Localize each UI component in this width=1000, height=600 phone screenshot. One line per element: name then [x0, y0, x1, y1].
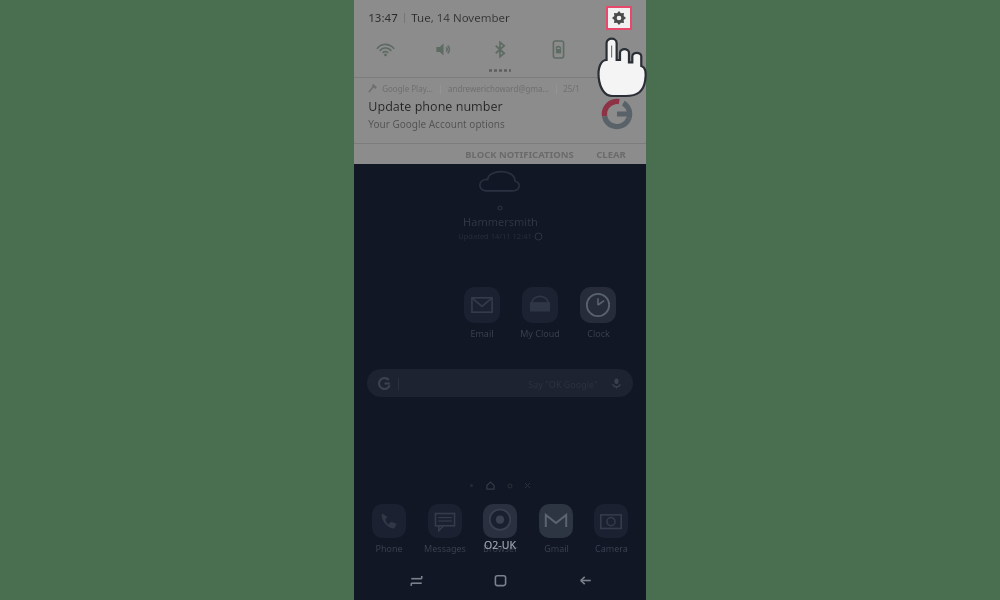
button[interactable]: Email: [454, 287, 510, 339]
staticText: Hammersmith: [463, 214, 538, 229]
button[interactable]: Wi-Fi: [372, 36, 398, 62]
staticText: Update phone number: [368, 98, 503, 115]
staticText: Updated 14/11 12:41: [458, 231, 532, 241]
button[interactable]: Bluetooth: [487, 36, 513, 62]
staticText: BLOCK NOTIFICATIONS: [465, 148, 574, 160]
staticText: Email: [470, 327, 494, 339]
staticText: Gmail: [544, 542, 569, 554]
button[interactable]: BLOCK NOTIFICATIONS: [461, 144, 578, 164]
staticText: Camera: [595, 542, 628, 554]
staticText: 13:47: [368, 10, 398, 26]
staticText: Phone: [375, 542, 403, 554]
button[interactable]: Camera: [586, 504, 636, 554]
staticText: CLEAR: [596, 148, 626, 160]
button[interactable]: Home: [477, 563, 523, 597]
button[interactable]: Sound: [430, 36, 456, 62]
button[interactable]: Gmail: [531, 504, 581, 554]
button[interactable]: Say "OK Google": [367, 369, 633, 397]
button[interactable]: Settings: [608, 8, 630, 28]
button[interactable]: Hammersmith: [354, 168, 646, 241]
staticText: Messages: [424, 542, 466, 554]
staticText: O2-UK: [484, 538, 516, 552]
staticText: Browser: [483, 542, 518, 554]
staticText: Google Play...: [382, 83, 433, 94]
button[interactable]: Browser: [475, 504, 525, 554]
button[interactable]: Phone: [364, 504, 414, 554]
staticText: andrewerichoward@gma...: [448, 83, 549, 94]
button[interactable]: Back: [562, 563, 608, 597]
button[interactable]: My Cloud: [512, 287, 568, 339]
staticText: My Cloud: [520, 327, 560, 339]
staticText: 25/1: [563, 83, 580, 94]
staticText: Say "OK Google": [528, 378, 598, 390]
staticText: Your Google Account options: [368, 117, 505, 131]
button[interactable]: CLEAR: [592, 144, 630, 164]
staticText: Clock: [587, 327, 610, 339]
button[interactable]: Messages: [420, 504, 470, 554]
button[interactable]: Flashlight: [602, 36, 628, 62]
button[interactable]: Recents: [393, 563, 439, 597]
button[interactable]: Clock: [570, 287, 626, 339]
staticText: Tue, 14 November: [411, 10, 510, 26]
button[interactable]: Auto rotate: [545, 36, 571, 62]
button[interactable]: Google Play...: [354, 78, 646, 143]
